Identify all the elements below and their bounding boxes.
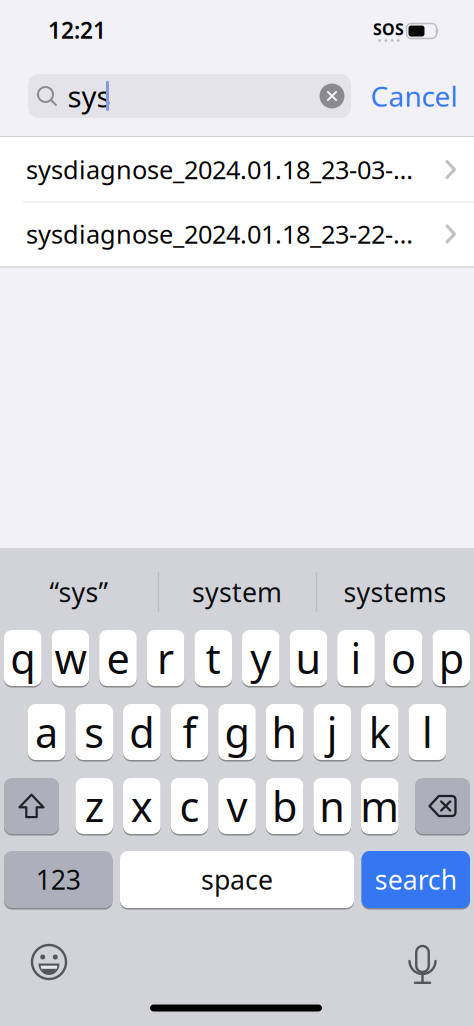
staticText: p xyxy=(439,631,464,685)
button[interactable]: w xyxy=(52,629,89,687)
button[interactable]: f xyxy=(171,703,208,761)
button[interactable]: g xyxy=(218,703,256,761)
button[interactable]: n xyxy=(313,777,351,835)
button[interactable]: x xyxy=(123,777,161,835)
staticText: m xyxy=(360,779,399,833)
staticText: 123 xyxy=(36,862,81,897)
staticText: space xyxy=(201,862,273,897)
button[interactable]: a xyxy=(28,703,65,761)
button[interactable]: v xyxy=(218,777,256,835)
button[interactable]: Numbers xyxy=(4,850,112,909)
button[interactable]: t xyxy=(194,629,232,687)
button[interactable]: p xyxy=(432,629,470,687)
button[interactable]: Dictate xyxy=(405,945,439,985)
staticText: x xyxy=(131,779,153,833)
button[interactable]: Search xyxy=(28,74,351,118)
button[interactable]: Clear text xyxy=(319,83,344,108)
staticText: b xyxy=(272,779,297,833)
staticText: n xyxy=(319,779,345,833)
button[interactable]: Cancel xyxy=(370,77,457,115)
staticText: 12:21 xyxy=(48,15,106,45)
staticText: v xyxy=(226,779,247,833)
staticText: c xyxy=(179,779,199,833)
button[interactable]: Delete xyxy=(415,777,470,835)
staticText: f xyxy=(182,705,196,759)
staticText: “sys” xyxy=(49,574,108,610)
staticText: search xyxy=(375,862,457,897)
staticText: o xyxy=(391,631,416,685)
button[interactable]: r xyxy=(147,629,184,687)
button[interactable]: systems xyxy=(320,564,470,620)
staticText: y xyxy=(250,631,271,685)
staticText: s xyxy=(84,705,104,759)
staticText: q xyxy=(10,631,35,685)
staticText: systems xyxy=(343,574,446,610)
staticText: Cancel xyxy=(370,77,457,115)
staticText: e xyxy=(106,631,129,685)
button[interactable]: s xyxy=(75,703,113,761)
staticText: g xyxy=(224,705,249,759)
button[interactable]: sysdiagnose_2024.01.18_23-03-… xyxy=(0,137,474,202)
staticText: t xyxy=(206,631,221,685)
button[interactable]: q xyxy=(4,629,42,687)
button[interactable]: “sys” xyxy=(4,564,154,620)
staticText: j xyxy=(327,705,338,759)
button[interactable]: Shift xyxy=(4,777,59,835)
staticText: system xyxy=(192,574,282,610)
button[interactable]: i xyxy=(337,629,375,687)
staticText: i xyxy=(350,631,361,685)
button[interactable]: b xyxy=(266,777,303,835)
button[interactable]: sysdiagnose_2024.01.18_23-22-… xyxy=(0,202,474,266)
staticText: d xyxy=(129,705,154,759)
button[interactable]: u xyxy=(290,629,327,687)
button[interactable]: j xyxy=(313,703,351,761)
staticText: w xyxy=(54,631,86,685)
staticText: z xyxy=(85,779,104,833)
button[interactable]: o xyxy=(385,629,422,687)
staticText: l xyxy=(422,705,433,759)
staticText: SOS xyxy=(373,18,404,40)
staticText: sysdiagnose_2024.01.18_23-22-… xyxy=(26,217,413,251)
button[interactable]: system xyxy=(162,564,312,620)
staticText: sysdiagnose_2024.01.18_23-03-… xyxy=(26,153,413,186)
staticText: a xyxy=(35,705,58,759)
button[interactable]: y xyxy=(242,629,280,687)
staticText: sys xyxy=(67,76,110,115)
button[interactable]: z xyxy=(75,777,113,835)
button[interactable]: e xyxy=(99,629,137,687)
button[interactable]: c xyxy=(171,777,208,835)
button[interactable]: search xyxy=(361,850,470,909)
staticText: h xyxy=(272,705,298,759)
button[interactable]: k xyxy=(361,703,399,761)
button[interactable]: d xyxy=(123,703,161,761)
staticText: k xyxy=(369,705,391,759)
button[interactable]: m xyxy=(361,777,399,835)
staticText: r xyxy=(157,631,174,685)
button[interactable]: Emoji xyxy=(31,944,67,980)
button[interactable]: l xyxy=(409,703,446,761)
staticText: u xyxy=(295,631,321,685)
button[interactable]: h xyxy=(266,703,303,761)
button[interactable]: space xyxy=(120,850,354,909)
